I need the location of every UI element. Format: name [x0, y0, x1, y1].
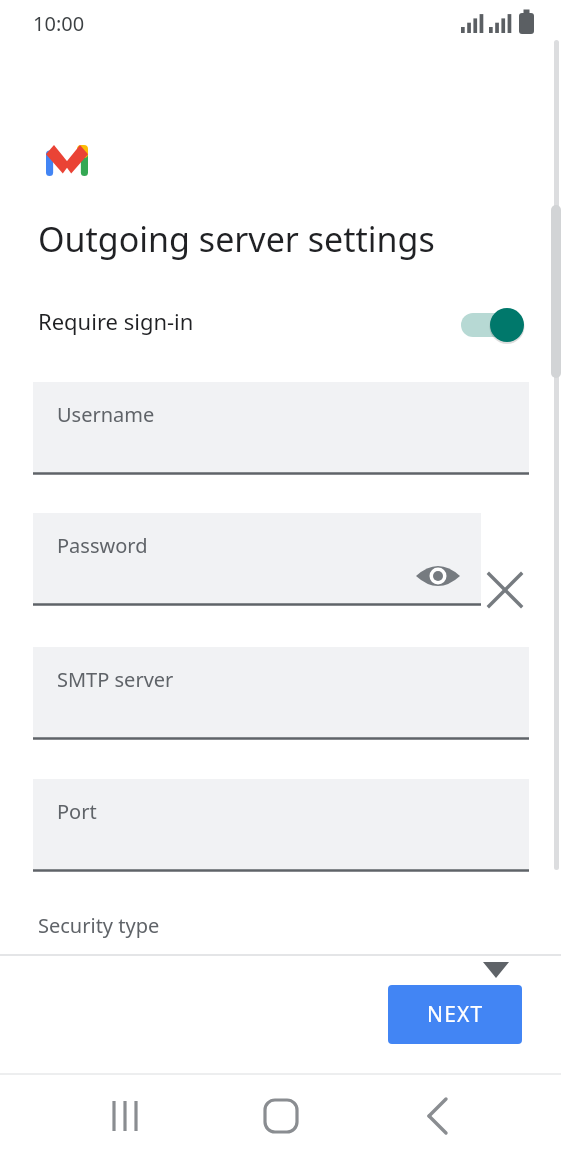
button[interactable]: SMTP server — [33, 647, 529, 739]
button[interactable]: Back — [398, 1085, 478, 1147]
button[interactable]: Password — [33, 513, 481, 605]
button[interactable]: Port — [33, 779, 529, 871]
staticText: NEXT — [427, 1000, 484, 1029]
staticText: Outgoing server settings — [38, 216, 435, 262]
button[interactable]: Security type — [0, 900, 561, 955]
staticText: SMTP server — [57, 666, 174, 693]
staticText: Port — [57, 798, 97, 825]
button[interactable]: NEXT — [388, 985, 522, 1044]
staticText: Security type — [38, 912, 160, 939]
staticText: Username — [57, 401, 155, 428]
button[interactable]: Username — [33, 382, 529, 474]
button[interactable]: Show password — [413, 551, 463, 601]
staticText: Password — [57, 532, 148, 559]
button[interactable]: Home — [241, 1085, 321, 1147]
button[interactable]: Recent apps — [85, 1085, 165, 1147]
button[interactable]: Require sign-in — [0, 295, 561, 353]
button[interactable]: Clear — [481, 566, 529, 614]
staticText: 10:00 — [33, 10, 85, 37]
staticText: Require sign-in — [38, 306, 194, 336]
